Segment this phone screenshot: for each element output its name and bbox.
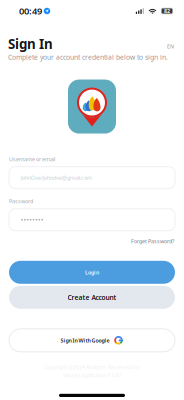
staticText: Login [85,269,99,276]
staticText: Username or email [9,156,55,163]
button[interactable]: Forget Password? [131,238,174,245]
staticText: 82 [164,7,170,15]
staticText: Sign In [8,35,53,53]
button[interactable]: Sign In With Google [9,329,175,352]
staticText: Complete your account credential below t… [8,53,168,62]
staticText: EN [167,43,174,50]
staticText: JohnDoe/johndoe@gmail.com [21,174,92,181]
button[interactable]: Create Account [9,286,175,309]
staticText: Sign In With Google [60,337,109,344]
staticText: written application F1.00 [63,372,121,379]
staticText: Copyright @2024 All Rights Reserved For [44,364,140,371]
button[interactable]: EN [167,35,176,50]
staticText: 00:49 [19,5,42,17]
button[interactable]: Login [9,261,175,284]
staticText: Forget Password? [131,238,174,245]
staticText: Password [9,198,33,205]
staticText: Create Account [67,293,116,302]
